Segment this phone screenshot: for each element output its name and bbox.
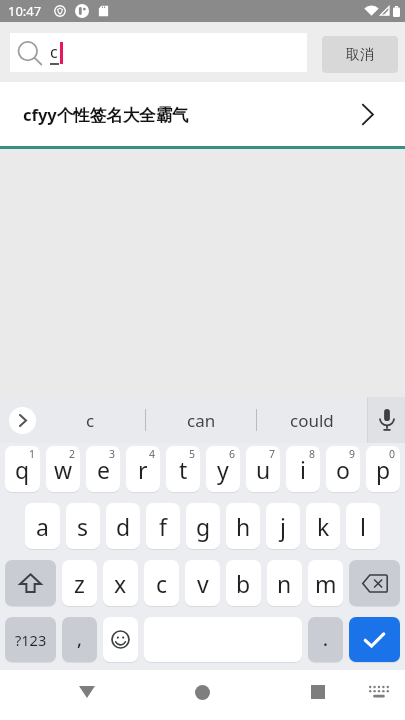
button[interactable]: h (226, 503, 260, 549)
staticText: z (74, 568, 85, 599)
staticText: c (86, 409, 95, 432)
button[interactable]: c (36, 397, 145, 443)
button[interactable]: 取消 (322, 36, 398, 73)
staticText: 3 (109, 447, 116, 461)
button[interactable]: f (146, 503, 180, 549)
button[interactable]: c (144, 560, 179, 606)
button[interactable]: r (126, 446, 160, 492)
button[interactable] (187, 677, 217, 707)
button[interactable]: z (62, 560, 97, 606)
button[interactable]: y (206, 446, 240, 492)
staticText: 取消 (346, 46, 374, 64)
staticText: f (159, 511, 167, 542)
button[interactable]: u (246, 446, 280, 492)
staticText: ?123 (15, 630, 47, 650)
button[interactable]: can (146, 397, 256, 443)
staticText: t (179, 454, 188, 485)
staticText: q (15, 454, 30, 485)
staticText: e (97, 454, 110, 485)
button[interactable]: x (103, 560, 138, 606)
staticText: 4 (149, 447, 156, 461)
button[interactable]: . (308, 617, 343, 662)
button[interactable] (303, 677, 333, 707)
staticText: c (50, 41, 58, 63)
staticText: a (36, 511, 49, 542)
staticText: o (336, 454, 350, 485)
staticText: b (236, 568, 251, 599)
staticText: k (317, 511, 330, 542)
staticText: m (315, 568, 337, 599)
staticText: l (360, 511, 366, 542)
button[interactable]: q (5, 446, 40, 492)
button[interactable]: d (106, 503, 140, 549)
button[interactable]: g (186, 503, 220, 549)
button[interactable] (364, 677, 394, 707)
button[interactable] (349, 617, 400, 662)
button[interactable]: a (25, 503, 60, 549)
staticText: h (236, 511, 251, 542)
staticText: x (114, 568, 127, 599)
staticText: cfyy个性签名大全霸气 (23, 103, 189, 126)
staticText: p (376, 454, 391, 485)
staticText: 2 (69, 447, 76, 461)
button[interactable]: b (226, 560, 261, 606)
staticText: w (54, 454, 73, 485)
staticText: 8 (309, 447, 316, 461)
staticText: y (217, 454, 229, 485)
staticText: v (197, 568, 209, 599)
button[interactable] (9, 407, 36, 434)
button[interactable]: w (46, 446, 80, 492)
staticText: 7 (269, 447, 276, 461)
button[interactable] (349, 560, 400, 606)
button[interactable]: , (62, 617, 97, 662)
staticText: d (116, 511, 131, 542)
button[interactable]: cfyy个性签名大全霸气 (0, 82, 405, 146)
button[interactable]: could (257, 397, 367, 443)
button[interactable]: m (308, 560, 343, 606)
button[interactable] (368, 397, 405, 443)
button[interactable]: k (306, 503, 340, 549)
staticText: could (290, 409, 334, 432)
staticText: n (277, 568, 292, 599)
staticText: 5 (189, 447, 196, 461)
staticText: can (187, 409, 216, 432)
staticText: 1 (29, 447, 36, 461)
button[interactable] (72, 677, 102, 707)
staticText: 0 (389, 447, 396, 461)
staticText: s (77, 511, 89, 542)
staticText: j (280, 511, 286, 542)
button[interactable]: s (66, 503, 100, 549)
staticText: u (256, 454, 271, 485)
button[interactable]: i (286, 446, 320, 492)
staticText: i (300, 454, 306, 485)
button[interactable] (5, 560, 56, 606)
button[interactable]: p (366, 446, 400, 492)
staticText: 6 (229, 447, 236, 461)
button[interactable]: e (86, 446, 120, 492)
button[interactable]: v (185, 560, 220, 606)
button[interactable]: ?123 (5, 617, 56, 662)
staticText: 9 (349, 447, 356, 461)
button[interactable]: l (346, 503, 380, 549)
staticText: . (323, 627, 328, 652)
staticText: g (196, 511, 211, 542)
staticText: c (156, 568, 168, 599)
staticText: 10:47 (8, 2, 42, 20)
button[interactable]: n (267, 560, 302, 606)
button[interactable]: c (10, 33, 307, 72)
button[interactable]: t (166, 446, 200, 492)
button[interactable]: j (266, 503, 300, 549)
button[interactable] (103, 617, 138, 662)
button[interactable]: o (326, 446, 360, 492)
staticText: r (138, 454, 148, 485)
staticText: , (77, 627, 82, 652)
